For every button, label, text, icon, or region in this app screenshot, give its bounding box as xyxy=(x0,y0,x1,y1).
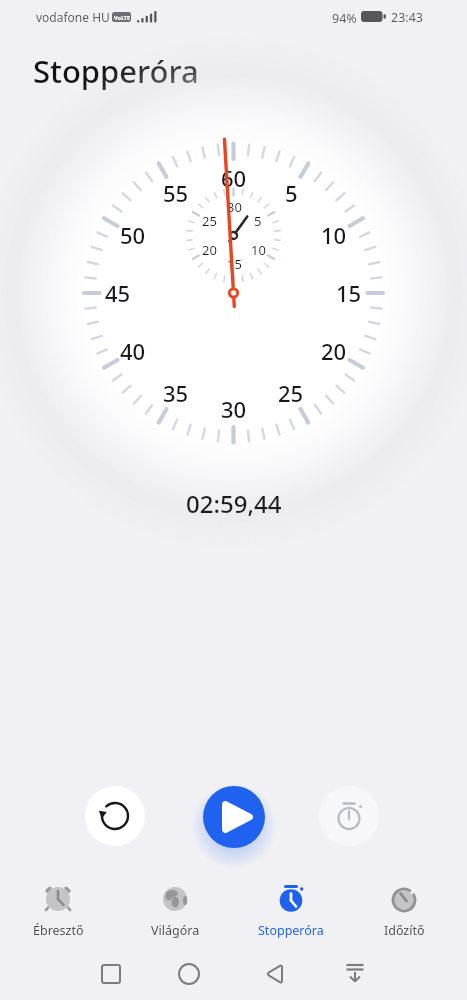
staticText: Időzítő xyxy=(384,922,425,939)
button[interactable]: Ébresztő xyxy=(1,874,115,944)
button[interactable] xyxy=(331,950,379,998)
staticText: 02:59,44 xyxy=(186,487,282,520)
staticText: 50 xyxy=(120,220,146,250)
staticText: 15 xyxy=(336,278,362,308)
staticText: Ébresztő xyxy=(33,922,84,939)
staticText: 25 xyxy=(278,378,304,408)
staticText: 30 xyxy=(227,198,242,216)
button[interactable]: Időzítő xyxy=(347,874,461,944)
button[interactable] xyxy=(251,950,299,998)
staticText: 94% xyxy=(332,10,357,27)
button[interactable] xyxy=(85,786,145,846)
button[interactable]: Világóra xyxy=(118,874,232,944)
staticText: Stopperóra xyxy=(258,922,324,939)
button[interactable]: Stopperóra xyxy=(234,874,348,944)
staticText: 23:43 xyxy=(391,9,423,26)
button[interactable] xyxy=(165,950,213,998)
button[interactable] xyxy=(203,786,265,848)
staticText: 5 xyxy=(254,212,262,230)
staticText: 5 xyxy=(285,178,298,208)
staticText: Stopperóra xyxy=(33,50,199,92)
staticText: 30 xyxy=(221,394,247,424)
staticText: 10 xyxy=(321,220,347,250)
button[interactable] xyxy=(87,950,135,998)
staticText: Világóra xyxy=(151,922,200,939)
staticText: 55 xyxy=(163,178,189,208)
staticText: 20 xyxy=(321,336,347,366)
staticText: VoLTE xyxy=(114,14,131,21)
staticText: 10 xyxy=(251,241,266,259)
staticText: 45 xyxy=(105,278,131,308)
button[interactable] xyxy=(319,786,379,846)
staticText: 35 xyxy=(163,378,189,408)
staticText: 25 xyxy=(202,212,217,230)
staticText: 15 xyxy=(227,255,242,273)
staticText: 60 xyxy=(221,163,247,193)
staticText: 40 xyxy=(120,336,146,366)
staticText: 20 xyxy=(202,241,217,259)
staticText: vodafone HU xyxy=(36,9,110,25)
